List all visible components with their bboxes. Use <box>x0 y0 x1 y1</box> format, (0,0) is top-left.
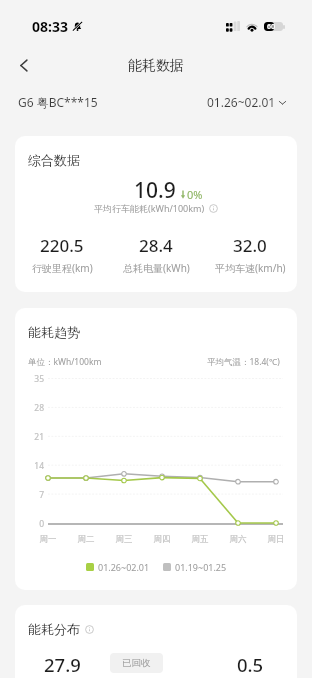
staticText: 10.9 <box>134 176 176 205</box>
button[interactable]: 01.26~02.01 <box>86 561 150 573</box>
button[interactable]: 已回收 <box>110 653 163 673</box>
staticText: 周六 <box>224 534 252 545</box>
staticText: 01.26~02.01 <box>98 561 150 573</box>
staticText: 14 <box>15 460 44 472</box>
staticText: 0.5 <box>237 652 264 677</box>
staticText: 220.5 <box>40 234 84 257</box>
staticText: 综合数据 <box>28 152 80 168</box>
button[interactable]: 01.26~02.01 <box>207 94 287 110</box>
staticText: 35 <box>15 373 44 385</box>
staticText: 能耗分布 <box>28 621 80 637</box>
staticText: 平均行车能耗(kWh/100km) <box>94 202 205 214</box>
staticText: 周三 <box>110 534 138 545</box>
staticText: 能耗趋势 <box>28 324 80 340</box>
staticText: 周四 <box>148 534 176 545</box>
staticText: 行驶里程(km) <box>32 261 93 275</box>
staticText: 21 <box>15 431 44 443</box>
staticText: 27.9 <box>44 652 81 677</box>
button[interactable]: Back <box>10 51 38 79</box>
staticText: 32.0 <box>233 234 267 257</box>
staticText: 0 <box>15 518 44 530</box>
staticText: 7 <box>15 489 44 501</box>
staticText: 周二 <box>72 534 100 545</box>
button[interactable]: 28.4 <box>109 234 203 275</box>
staticText: 总耗电量(kWh) <box>123 261 190 275</box>
staticText: 01.26~02.01 <box>207 94 276 110</box>
staticText: 平均车速(km/h) <box>215 261 286 275</box>
staticText: 28 <box>15 402 44 414</box>
staticText: 08:33 <box>32 17 68 36</box>
staticText: 周一 <box>34 534 62 545</box>
staticText: 60 <box>267 22 276 31</box>
button[interactable]: 220.5 <box>15 234 109 275</box>
staticText: 已回收 <box>122 657 151 669</box>
staticText: 0% <box>187 187 203 202</box>
staticText: 能耗数据 <box>128 57 184 75</box>
staticText: 周日 <box>262 534 290 545</box>
button[interactable]: 32.0 <box>203 234 297 275</box>
staticText: 周五 <box>186 534 214 545</box>
button[interactable]: 01.19~01.25 <box>163 561 227 573</box>
staticText: G6 粤BC***15 <box>18 94 98 110</box>
staticText: 28.4 <box>139 234 173 257</box>
staticText: 01.19~01.25 <box>175 561 227 573</box>
staticText: 平均气温：18.4(℃) <box>207 356 280 368</box>
staticText: 单位：kWh/100km <box>28 356 102 368</box>
